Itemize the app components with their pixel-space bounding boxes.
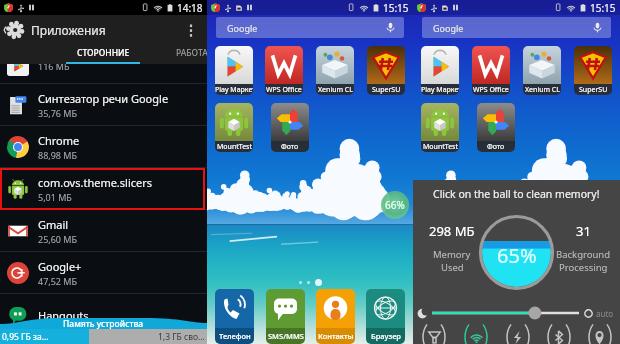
staticText: Memory <box>433 248 471 261</box>
staticText: Приложения <box>31 22 106 38</box>
staticText: Синтезатор речи Google <box>38 91 169 106</box>
staticText: 5,01 МБ <box>38 191 72 203</box>
button[interactable]: Play Маркет <box>215 46 253 95</box>
button[interactable]: Память устройства <box>0 310 207 344</box>
staticText: Play Маркет <box>421 85 459 95</box>
button[interactable]: Фото <box>477 103 515 152</box>
button[interactable]: Gmail <box>0 210 207 252</box>
staticText: 15:15 <box>590 1 616 15</box>
button[interactable]: Flashlight <box>413 320 455 344</box>
staticText: 15:15 <box>383 1 409 15</box>
button[interactable]: Google+ <box>0 252 207 294</box>
button[interactable]: Navigate up <box>0 15 207 44</box>
staticText: 47,52 МБ <box>38 275 78 287</box>
button[interactable]: Google <box>422 17 611 38</box>
button[interactable]: Auto brightness <box>582 307 595 320</box>
staticText: Used <box>441 261 464 274</box>
staticText: 1,3 ГБ сво... <box>158 331 205 343</box>
button[interactable]: MountTest <box>421 103 459 152</box>
staticText: 66% <box>385 198 405 212</box>
button[interactable]: Xenium CL <box>523 46 561 95</box>
staticText: Chrome <box>38 133 80 148</box>
button[interactable]: Brightness <box>432 306 579 320</box>
staticText: MountTest <box>423 142 458 152</box>
button[interactable]: 116 МБ <box>0 64 207 84</box>
staticText: SuperSU <box>579 85 608 95</box>
staticText: 14:18 <box>177 1 203 15</box>
staticText: SuperSU <box>372 85 401 95</box>
staticText: WPS Office <box>266 85 302 95</box>
button[interactable]: Google <box>216 17 404 38</box>
staticText: Память устройства <box>63 318 144 329</box>
other: Voice search <box>592 22 603 33</box>
staticText: Hangouts <box>38 308 89 323</box>
staticText: Контакты <box>318 331 354 341</box>
button[interactable]: Chrome <box>0 126 207 168</box>
button[interactable]: SuperSU <box>574 46 612 95</box>
staticText: Click on the ball to clean memory! <box>433 187 600 201</box>
staticText: 65% <box>497 242 537 269</box>
button[interactable]: Контакты <box>316 289 355 344</box>
staticText: Телефон <box>219 331 251 341</box>
button[interactable]: СТОРОННИЕ <box>66 44 140 64</box>
button[interactable]: WPS Office <box>472 46 510 95</box>
button[interactable]: Play Маркет <box>421 46 459 95</box>
staticText: Play Маркет <box>215 85 253 95</box>
staticText: 25,60 МБ <box>38 233 78 245</box>
staticText: Фото <box>281 142 299 152</box>
button[interactable]: Clean memory <box>478 214 555 291</box>
button[interactable]: РАБОТА <box>155 44 229 64</box>
staticText: MountTest <box>217 142 252 152</box>
staticText: Xenium CL <box>525 85 560 95</box>
button[interactable]: Синтезатор речи Google <box>0 84 207 126</box>
button[interactable]: com.ovs.theme.slicers <box>0 168 207 210</box>
staticText: Processing <box>559 261 608 274</box>
button[interactable]: Sync <box>497 320 538 344</box>
button[interactable]: Location <box>579 320 620 344</box>
staticText: Фото <box>487 142 505 152</box>
button[interactable]: More options <box>180 19 202 41</box>
button[interactable]: MountTest <box>215 103 253 152</box>
staticText: com.ovs.theme.slicers <box>38 175 153 190</box>
other: Voice search <box>385 22 396 33</box>
staticText: 298 МБ <box>429 222 475 240</box>
staticText: СТОРОННИЕ <box>77 47 130 59</box>
button[interactable]: Браузер <box>366 289 405 344</box>
staticText: Background <box>556 248 611 261</box>
staticText: 35,76 МБ <box>38 107 78 119</box>
staticText: SMS/MMS <box>268 331 304 341</box>
staticText: Google <box>433 22 464 34</box>
other: Navigate up <box>2 18 26 42</box>
staticText: РАБОТА <box>176 47 208 59</box>
staticText: Xenium CL <box>318 85 353 95</box>
staticText: 31 <box>576 222 591 240</box>
button[interactable]: Hangouts <box>0 294 207 336</box>
button[interactable]: Фото <box>271 103 309 152</box>
staticText: 88,98 МБ <box>38 149 78 161</box>
button[interactable]: Xenium CL <box>316 46 354 95</box>
staticText: Браузер <box>371 331 401 341</box>
staticText: Google+ <box>38 259 82 274</box>
staticText: Gmail <box>38 217 69 232</box>
staticText: WPS Office <box>473 85 509 95</box>
button[interactable]: 66% <box>381 191 409 219</box>
staticText: Google <box>227 22 258 34</box>
staticText: 0,95 ГБ за... <box>2 331 49 343</box>
button[interactable]: SMS/MMS <box>266 289 305 344</box>
staticText: 116 МБ <box>38 64 70 72</box>
button[interactable]: SuperSU <box>367 46 405 95</box>
button[interactable]: Wi-Fi <box>455 320 497 344</box>
button[interactable]: Bluetooth <box>538 320 579 344</box>
button[interactable]: Телефон <box>215 289 254 344</box>
staticText: auto <box>596 308 614 319</box>
button[interactable]: WPS Office <box>265 46 303 95</box>
